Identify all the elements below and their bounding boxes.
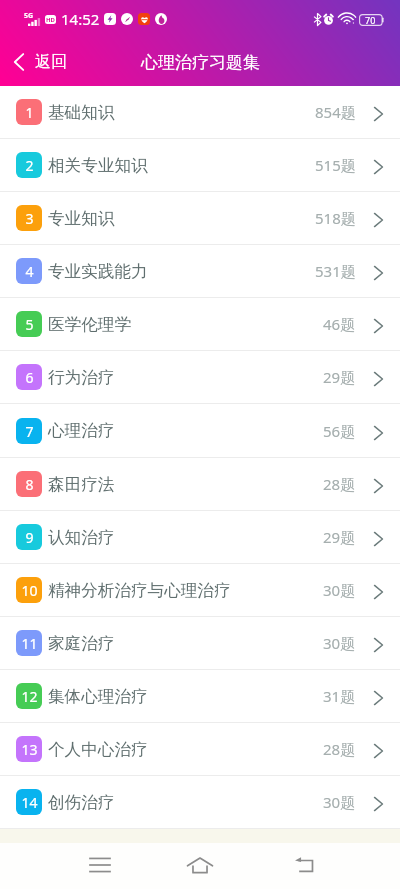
staticText: 5G	[24, 11, 34, 21]
button[interactable]: Recent apps	[72, 842, 128, 888]
staticText: 31题	[323, 686, 356, 706]
staticText: 个人中心治疗	[48, 739, 148, 760]
staticText: 14:52	[61, 9, 100, 29]
staticText: 5	[25, 315, 34, 334]
staticText: 精神分析治疗与心理治疗	[48, 580, 231, 601]
button[interactable]: 5	[0, 298, 400, 351]
staticText: 46题	[323, 314, 356, 334]
button[interactable]: 6	[0, 351, 400, 404]
staticText: 515题	[315, 155, 356, 175]
button[interactable]: 9	[0, 511, 400, 564]
staticText: 返回	[35, 52, 67, 72]
staticText: 518题	[315, 208, 356, 228]
staticText: 10	[21, 581, 38, 600]
staticText: 70	[365, 14, 376, 26]
staticText: 13	[21, 740, 38, 759]
staticText: 创伤治疗	[48, 792, 115, 813]
staticText: 9	[25, 528, 34, 547]
button[interactable]: Back	[276, 842, 332, 888]
button[interactable]: 2	[0, 139, 400, 192]
staticText: 30题	[323, 633, 356, 653]
button[interactable]: Home	[172, 842, 228, 888]
staticText: 1	[25, 103, 34, 122]
staticText: 11	[21, 634, 38, 653]
staticText: 854题	[315, 102, 356, 122]
staticText: 集体心理治疗	[48, 686, 148, 707]
button[interactable]: 返回	[0, 44, 81, 80]
staticText: 3	[25, 209, 34, 228]
button[interactable]: 4	[0, 245, 400, 298]
staticText: 8	[25, 475, 34, 494]
staticText: 4	[25, 262, 34, 281]
button[interactable]: 11	[0, 617, 400, 670]
button[interactable]: 7	[0, 404, 400, 458]
staticText: 6	[25, 368, 34, 387]
staticText: 12	[21, 687, 38, 706]
staticText: 29题	[323, 527, 356, 547]
staticText: 行为治疗	[48, 367, 115, 388]
staticText: 28题	[323, 474, 356, 494]
staticText: 相关专业知识	[48, 155, 148, 176]
button[interactable]: 12	[0, 670, 400, 723]
button[interactable]: 1	[0, 86, 400, 139]
staticText: 森田疗法	[48, 474, 115, 495]
staticText: 专业实践能力	[48, 261, 148, 282]
button[interactable]: 3	[0, 192, 400, 245]
staticText: 2	[25, 156, 34, 175]
staticText: 医学伦理学	[48, 314, 131, 335]
staticText: 心理治疗	[48, 420, 115, 441]
staticText: 专业知识	[48, 208, 115, 229]
staticText: 认知治疗	[48, 527, 115, 548]
button[interactable]: 14	[0, 776, 400, 829]
staticText: 28题	[323, 739, 356, 759]
staticText: 531题	[315, 261, 356, 281]
staticText: 家庭治疗	[48, 633, 115, 654]
staticText: HD	[46, 16, 55, 24]
button[interactable]: 13	[0, 723, 400, 776]
staticText: 56题	[323, 421, 356, 441]
staticText: 30题	[323, 792, 356, 812]
staticText: 基础知识	[48, 102, 115, 123]
staticText: 心理治疗习题集	[141, 52, 260, 73]
staticText: 7	[25, 422, 34, 441]
staticText: 29题	[323, 367, 356, 387]
button[interactable]: 10	[0, 564, 400, 617]
staticText: 14	[21, 793, 38, 812]
button[interactable]: 8	[0, 458, 400, 511]
staticText: 30题	[323, 580, 356, 600]
